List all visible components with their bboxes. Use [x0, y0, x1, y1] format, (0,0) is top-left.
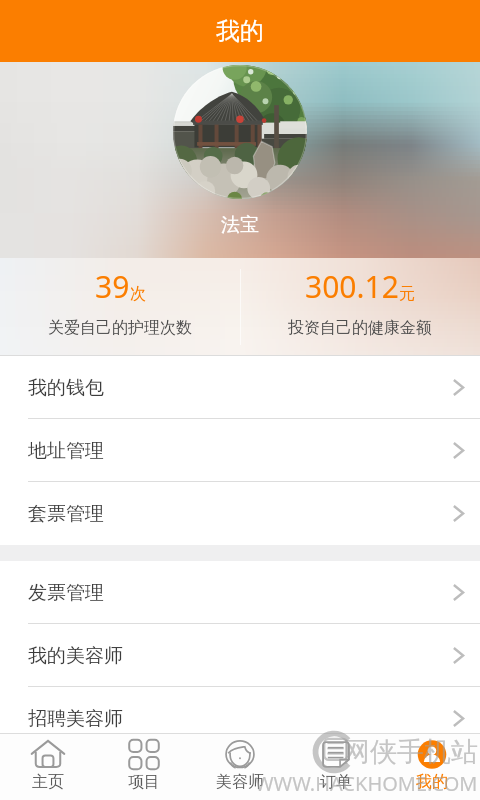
staticText: 主页	[32, 772, 64, 792]
staticText: 我的钱包	[28, 376, 104, 400]
button[interactable]: 我的钱包	[0, 356, 480, 419]
staticText: 投资自己的健康金额	[288, 318, 432, 338]
staticText: 订单	[320, 772, 352, 792]
staticText: 法宝	[221, 213, 259, 237]
staticText: 美容师	[216, 772, 264, 792]
button[interactable]: 地址管理	[0, 419, 480, 482]
button[interactable]: 我的美容师	[0, 624, 480, 687]
staticText: 39	[95, 266, 130, 307]
staticText: 次	[130, 284, 146, 304]
staticText: 300.12	[305, 266, 399, 307]
button[interactable]: 订单	[288, 734, 384, 800]
staticText: 项目	[128, 772, 160, 792]
button[interactable]: 我的	[384, 734, 480, 800]
staticText: 我的	[416, 772, 448, 792]
button[interactable]: 美容师	[192, 734, 288, 800]
staticText: 地址管理	[28, 439, 104, 463]
staticText: 元	[399, 284, 415, 304]
staticText: 关爱自己的护理次数	[48, 318, 192, 338]
button[interactable]: 套票管理	[0, 482, 480, 545]
staticText: 我的	[216, 16, 264, 46]
staticText: 招聘美容师	[28, 707, 123, 731]
staticText: 网侠手机站	[343, 735, 478, 769]
staticText: 发票管理	[28, 581, 104, 605]
staticText: WWW.HACKHOME.COM	[255, 770, 478, 797]
button[interactable]: 发票管理	[0, 561, 480, 624]
button[interactable]: 项目	[96, 734, 192, 800]
staticText: 套票管理	[28, 502, 104, 526]
button[interactable]: 主页	[0, 734, 96, 800]
button[interactable]: 招聘美容师	[0, 687, 480, 750]
staticText: 我的美容师	[28, 644, 123, 668]
